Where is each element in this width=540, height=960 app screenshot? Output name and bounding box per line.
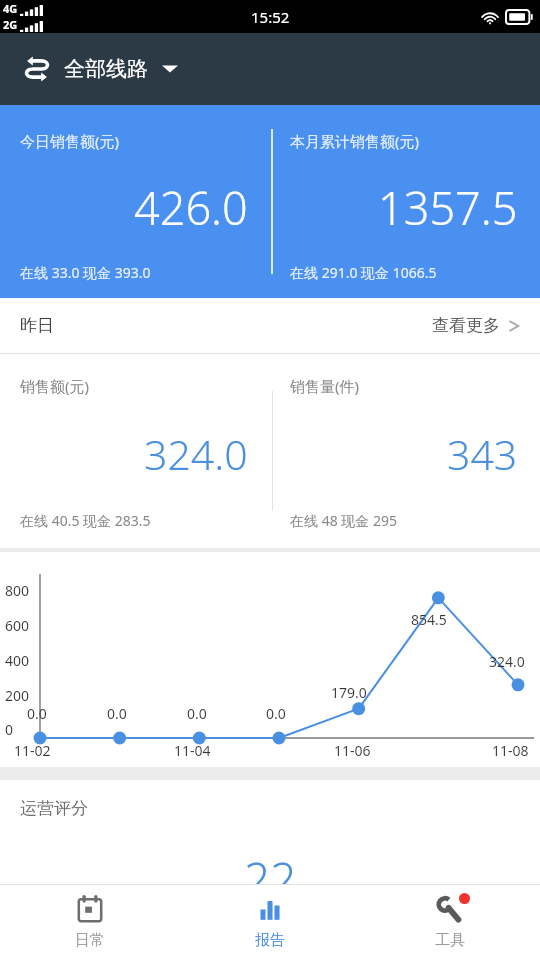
staticText: 在线 40.5 现金 283.5 <box>20 511 151 530</box>
staticText: 11-04 <box>174 741 211 760</box>
staticText: 0.0 <box>107 704 127 723</box>
staticText: 22 <box>244 847 297 910</box>
staticText: 324.0 <box>489 652 525 671</box>
staticText: 0.0 <box>27 704 47 723</box>
staticText: 本月累计销售额(元) <box>290 131 420 151</box>
button[interactable]: Switch route <box>0 33 540 105</box>
staticText: 11-02 <box>14 741 51 760</box>
staticText: 854.5 <box>411 610 447 629</box>
staticText: 4G <box>3 1 18 16</box>
staticText: 销售额(元) <box>20 376 90 396</box>
button[interactable]: Tools <box>360 885 540 960</box>
staticText: 销售量(件) <box>290 376 360 396</box>
staticText: 在线 33.0 现金 393.0 <box>20 263 151 282</box>
staticText: 400 <box>5 651 30 670</box>
staticText: 15:52 <box>251 7 290 27</box>
staticText: 在线 291.0 现金 1066.5 <box>290 263 437 282</box>
staticText: 0 <box>5 720 14 739</box>
other: Tools <box>436 896 464 924</box>
staticText: 2G <box>3 17 18 32</box>
staticText: 运营评分 <box>20 798 88 819</box>
staticText: 日常 <box>75 931 105 950</box>
button[interactable]: 报告 <box>180 885 360 960</box>
staticText: 11-06 <box>334 741 371 760</box>
staticText: 343 <box>447 426 518 482</box>
staticText: 200 <box>5 686 30 705</box>
staticText: 工具 <box>435 931 465 950</box>
staticText: 324.0 <box>144 426 248 482</box>
staticText: 800 <box>5 581 30 600</box>
staticText: 0.0 <box>266 704 286 723</box>
staticText: 179.0 <box>331 683 367 702</box>
staticText: 全部线路 <box>64 56 148 82</box>
staticText: 在线 48 现金 295 <box>290 511 397 530</box>
staticText: 11-08 <box>492 741 529 760</box>
button[interactable]: 日常 <box>0 885 180 960</box>
button[interactable]: 昨日 <box>0 298 540 353</box>
staticText: 0.0 <box>187 704 207 723</box>
staticText: 426.0 <box>134 177 248 238</box>
staticText: 查看更多 <box>432 315 500 336</box>
staticText: 1357.5 <box>378 177 518 238</box>
staticText: 今日销售额(元) <box>20 131 120 151</box>
staticText: 昨日 <box>20 315 54 336</box>
staticText: 报告 <box>255 931 285 950</box>
staticText: 600 <box>5 616 30 635</box>
other: Switch route <box>22 54 52 84</box>
